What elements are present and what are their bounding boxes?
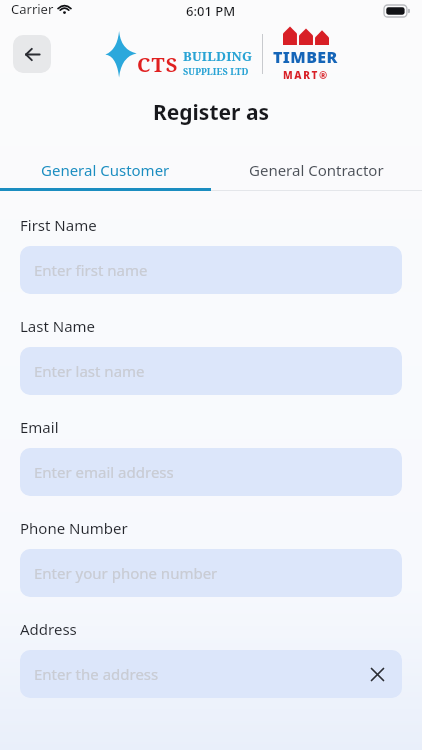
button[interactable]: Enter last name [20, 347, 402, 395]
staticText: Carrier [11, 0, 54, 18]
staticText: 6:01 PM [186, 2, 236, 20]
button[interactable]: Back [13, 35, 51, 73]
staticText: First Name [20, 215, 97, 235]
staticText: MART® [283, 68, 329, 82]
button[interactable]: Enter first name [20, 246, 402, 294]
button[interactable]: Enter email address [20, 448, 402, 496]
staticText: General Customer [41, 160, 170, 180]
staticText: Last Name [20, 316, 96, 336]
button[interactable]: Enter your phone number [20, 549, 402, 597]
staticText: BUILDING [183, 47, 253, 65]
staticText: Phone Number [20, 518, 128, 538]
staticText: SUPPLIES LTD [183, 65, 249, 77]
button[interactable]: Enter the address [20, 650, 402, 698]
button[interactable]: General Contractor [211, 152, 422, 188]
staticText: TIMBER [273, 46, 338, 68]
staticText: Enter last name [34, 361, 145, 381]
button[interactable]: Clear address [366, 663, 388, 685]
staticText: Email [20, 417, 59, 437]
staticText: General Contractor [249, 160, 384, 180]
staticText: Enter your phone number [34, 563, 218, 583]
staticText: CTS [137, 51, 179, 78]
staticText: Enter first name [34, 260, 148, 280]
staticText: Enter the address [34, 664, 159, 684]
staticText: Address [20, 619, 77, 639]
staticText: Register as [0, 98, 422, 127]
staticText: Enter email address [34, 462, 174, 482]
button[interactable]: General Customer [0, 152, 211, 188]
